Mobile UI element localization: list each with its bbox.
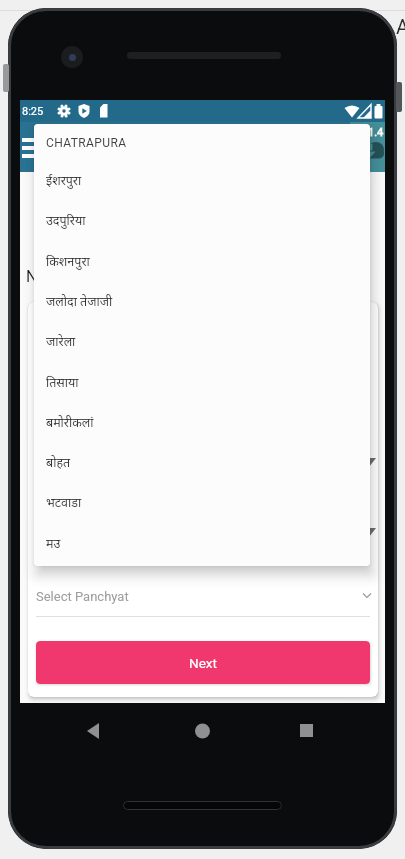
staticText: A <box>396 15 405 38</box>
button[interactable] <box>172 707 232 757</box>
staticText: Next <box>189 655 217 671</box>
staticText: जारेला <box>46 335 76 351</box>
staticText: तिसाया <box>46 376 79 392</box>
button[interactable]: जलोदा तेजाजी <box>46 287 358 319</box>
button[interactable]: ईशरपुरा <box>46 166 358 198</box>
button[interactable]: CHATRAPURA <box>46 133 246 153</box>
button[interactable]: Next <box>36 641 370 684</box>
staticText: मउ <box>46 537 61 553</box>
button[interactable]: बोहत <box>46 448 358 480</box>
staticText: CHATRAPURA <box>46 136 127 150</box>
staticText: बमोरीकलां <box>46 416 94 432</box>
staticText: जलोदा तेजाजी <box>46 295 113 311</box>
staticText: 1.4 <box>368 126 384 139</box>
button[interactable] <box>63 707 123 757</box>
button[interactable] <box>276 707 336 757</box>
button[interactable] <box>20 122 66 172</box>
staticText: New Registration <box>26 267 148 286</box>
staticText: भटवाडा <box>46 496 82 512</box>
button[interactable]: 1.4 <box>350 122 385 172</box>
button[interactable]: जारेला <box>46 327 358 359</box>
button[interactable]: तिसाया <box>46 368 358 400</box>
button[interactable]: बमोरीकलां <box>46 408 358 440</box>
staticText: Select Panchyat <box>36 589 129 604</box>
button[interactable]: किशनपुरा <box>46 247 358 279</box>
staticText: ईशरपुरा <box>46 174 82 190</box>
staticText: किशनपुरा <box>46 255 90 271</box>
staticText: 8:25 <box>22 105 44 118</box>
button[interactable]: उदपुरिया <box>46 206 358 238</box>
button[interactable]: मउ <box>46 529 358 561</box>
staticText: बोहत <box>46 456 71 472</box>
button[interactable]: Select Panchyat <box>36 583 370 609</box>
staticText: उदपुरिया <box>46 214 86 230</box>
button[interactable]: भटवाडा <box>46 488 358 520</box>
